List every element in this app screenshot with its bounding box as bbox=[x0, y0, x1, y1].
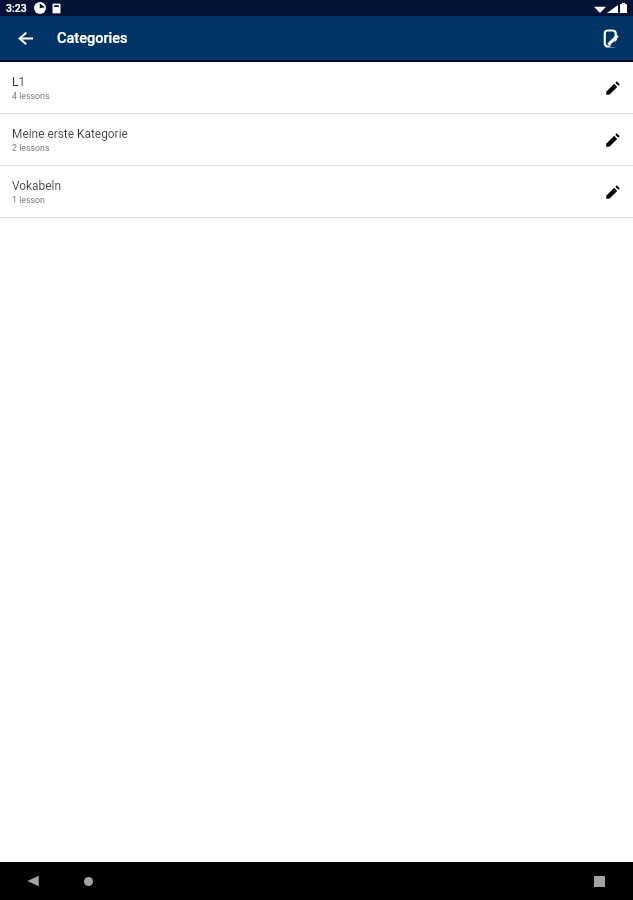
staticText: 1 lesson bbox=[12, 195, 45, 205]
button[interactable]: Edit L1 bbox=[593, 68, 633, 108]
staticText: 3:23 bbox=[6, 2, 27, 14]
button[interactable]: Back bbox=[15, 863, 51, 899]
button[interactable]: L1 bbox=[0, 62, 633, 114]
button[interactable]: Home bbox=[70, 863, 106, 899]
staticText: L1 bbox=[12, 75, 26, 89]
button[interactable]: Vokabeln bbox=[0, 166, 633, 218]
staticText: 4 lessons bbox=[12, 91, 50, 101]
staticText: Meine erste Kategorie bbox=[12, 127, 128, 141]
button[interactable]: Edit Meine erste Kategorie bbox=[593, 120, 633, 160]
button[interactable]: Navigate up bbox=[0, 16, 52, 60]
button[interactable]: Edit Vokabeln bbox=[593, 172, 633, 212]
button[interactable]: Meine erste Kategorie bbox=[0, 114, 633, 166]
staticText: Vokabeln bbox=[12, 179, 62, 193]
button[interactable]: Recent apps bbox=[581, 863, 617, 899]
staticText: 2 lessons bbox=[12, 143, 50, 153]
button[interactable]: Add category bbox=[589, 16, 633, 60]
staticText: Categories bbox=[57, 30, 128, 47]
